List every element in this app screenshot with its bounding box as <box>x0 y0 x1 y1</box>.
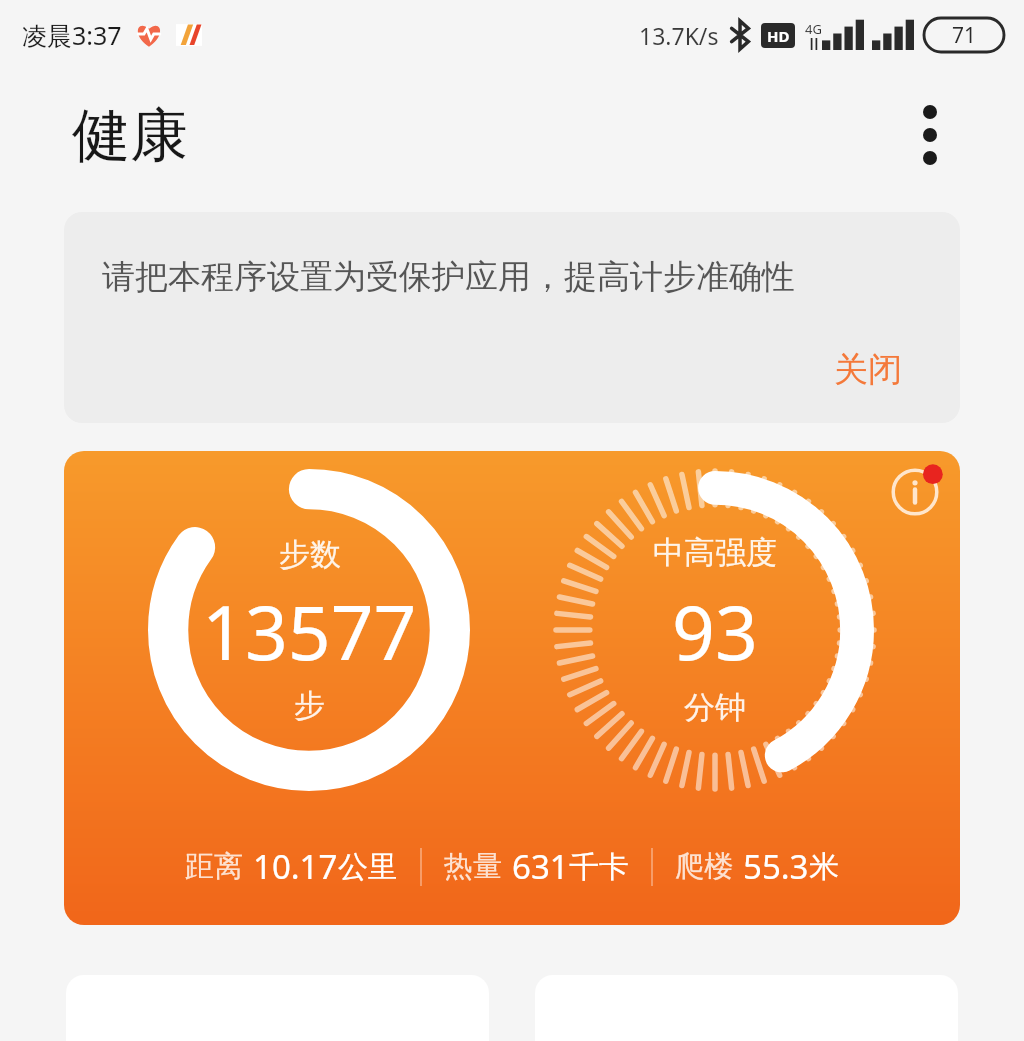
button[interactable]: Info <box>64 451 960 925</box>
staticText: 71 <box>952 21 977 50</box>
staticText: 13.7K/s <box>639 20 719 51</box>
staticText: HD <box>767 26 790 46</box>
staticText: 凌晨3:37 <box>22 18 122 52</box>
staticText: 公里 <box>338 848 398 886</box>
staticText: 步数 <box>279 535 341 574</box>
staticText: 13577 <box>202 580 417 682</box>
staticText: 55.3 <box>743 844 809 889</box>
button[interactable]: More options <box>884 89 976 181</box>
staticText: 爬楼 <box>675 848 733 885</box>
button[interactable]: 关闭 <box>776 342 960 397</box>
staticText: 631 <box>512 844 569 889</box>
staticText: 步 <box>294 686 325 725</box>
staticText: 热量 <box>444 848 502 885</box>
staticText: 10.17 <box>253 844 338 889</box>
staticText: 千卡 <box>569 848 629 886</box>
staticText: 健康 <box>72 99 188 172</box>
staticText: 米 <box>809 848 839 886</box>
staticText: 关闭 <box>834 348 902 391</box>
staticText: 分钟 <box>684 688 746 727</box>
staticText: 中高强度 <box>653 533 777 572</box>
staticText: 距离 <box>185 848 243 885</box>
staticText: 4G <box>805 20 822 38</box>
button[interactable]: Info <box>882 459 948 525</box>
staticText: 请把本程序设置为受保护应用，提高计步准确性 <box>102 256 795 298</box>
staticText: 93 <box>672 580 758 682</box>
